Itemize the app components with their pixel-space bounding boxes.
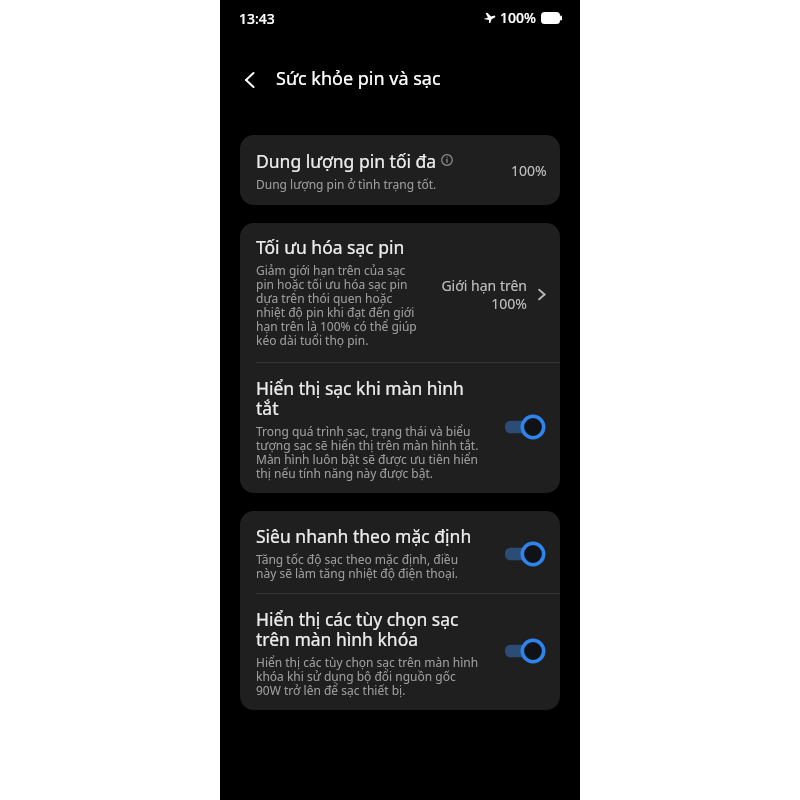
button[interactable]: Hiển thị các tùy chọn sạc trên màn hình … [240, 594, 560, 710]
staticText: Giới hạn trên 100% [441, 276, 527, 313]
staticText: Dung lượng pin tối đa [256, 149, 437, 173]
staticText: Hiển thị các tùy chọn sạc trên màn hình … [256, 607, 480, 651]
staticText: Tăng tốc độ sạc theo mặc định, điều này … [256, 551, 480, 582]
button[interactable]: Back [232, 60, 268, 96]
button[interactable]: Hiển thị sạc khi màn hình tắt [240, 363, 560, 493]
button[interactable]: Tối ưu hóa sạc pin [240, 223, 560, 362]
staticText: 100% [500, 8, 536, 27]
staticText: Hiển thị các tùy chọn sạc trên màn hình … [256, 654, 480, 699]
staticText: Hiển thị sạc khi màn hình tắt [256, 376, 480, 420]
staticText: Giảm giới hạn trên của sạc pin hoặc tối … [256, 262, 422, 349]
button[interactable]: Toggle on [501, 635, 547, 667]
staticText: Siêu nhanh theo mặc định [256, 524, 472, 548]
button[interactable]: Toggle on [501, 411, 547, 443]
staticText: Tối ưu hóa sạc pin [256, 235, 405, 259]
button[interactable]: Dung lượng pin tối đa [240, 135, 560, 205]
button[interactable]: Toggle on [501, 538, 547, 570]
staticText: 100% [511, 161, 547, 180]
staticText: Dung lượng pin ở tình trạng tốt. [256, 176, 437, 192]
button[interactable]: Siêu nhanh theo mặc định [240, 511, 560, 593]
staticText: 13:43 [239, 9, 275, 28]
staticText: Sức khỏe pin và sạc [276, 66, 441, 91]
staticText: Trong quá trình sạc, trạng thái và biểu … [256, 423, 480, 482]
